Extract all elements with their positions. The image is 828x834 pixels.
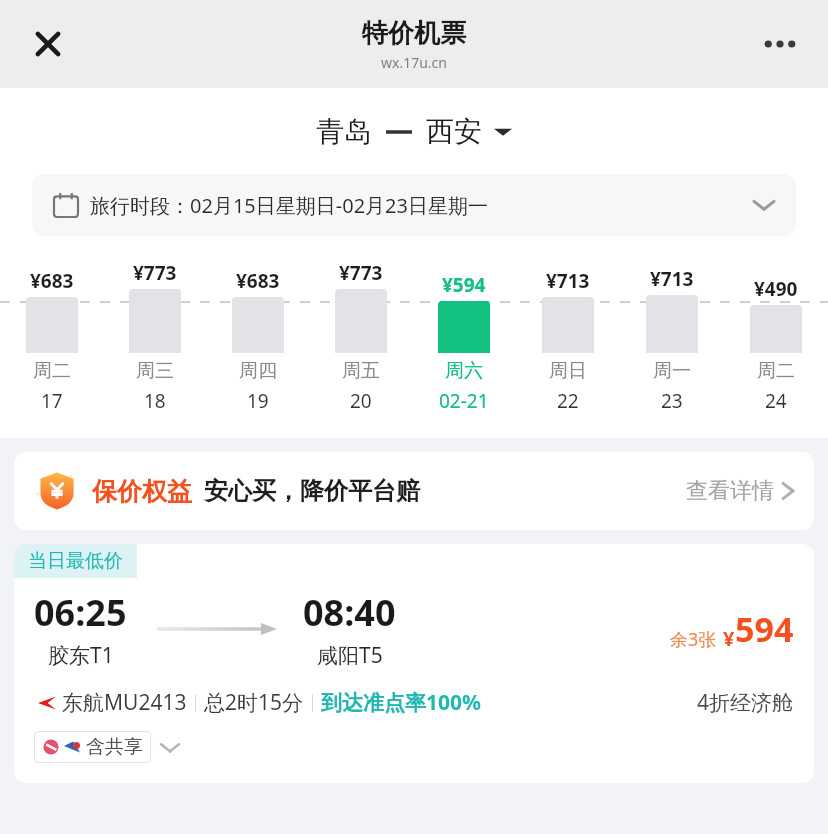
staticText: ¥773 [133, 260, 177, 286]
staticText: 4折经济舱 [697, 688, 794, 717]
button[interactable]: 保价权益 [14, 452, 814, 530]
staticText: 19 [247, 388, 269, 414]
staticText: 周一 [653, 359, 691, 383]
button[interactable]: ¥773 [309, 258, 412, 424]
button[interactable]: ¥594 [412, 258, 516, 424]
staticText: ¥683 [236, 268, 280, 294]
button[interactable]: ¥683 [0, 258, 103, 424]
staticText: 余3张 [670, 627, 717, 652]
staticText: 周四 [239, 359, 277, 383]
staticText: ¥713 [546, 268, 590, 294]
staticText: 当日最低价 [28, 549, 123, 573]
button[interactable]: 当日最低价 [14, 544, 814, 783]
staticText: 青岛 [316, 114, 372, 149]
staticText: ¥ [723, 625, 735, 652]
staticText: 总2时15分 [204, 688, 304, 717]
staticText: 周五 [342, 359, 380, 383]
staticText: 08:40 [303, 588, 396, 637]
staticText: ¥490 [754, 276, 798, 302]
staticText: 23 [661, 388, 683, 414]
staticText: ¥773 [339, 260, 383, 286]
staticText: 周三 [136, 359, 174, 383]
staticText: 18 [144, 388, 166, 414]
staticText: 06:25 [34, 588, 127, 637]
staticText: 胶东T1 [48, 641, 114, 670]
button[interactable]: ¥490 [724, 258, 828, 424]
staticText: ¥713 [650, 266, 694, 292]
button[interactable]: Close [22, 18, 74, 70]
staticText: 02-21 [439, 388, 489, 414]
staticText: 周二 [757, 359, 795, 383]
staticText: 咸阳T5 [317, 641, 383, 670]
staticText: 查看详情 [686, 477, 774, 505]
staticText: 保价权益 [92, 476, 192, 507]
button[interactable]: More options [754, 18, 806, 70]
staticText: wx.17u.cn [381, 53, 447, 72]
staticText: 周日 [549, 359, 587, 383]
staticText: 含共享 [86, 735, 143, 759]
staticText: 安心买，降价平台赔 [204, 476, 420, 506]
staticText: 20 [350, 388, 372, 414]
staticText: 24 [765, 388, 787, 414]
button[interactable]: 含共享 [34, 731, 151, 763]
staticText: 17 [41, 388, 63, 414]
staticText: 594 [735, 606, 794, 652]
staticText: 东航MU2413 [62, 688, 187, 717]
staticText: 周六 [445, 359, 483, 383]
button[interactable]: ¥683 [206, 258, 309, 424]
button[interactable]: 青岛 [316, 114, 512, 149]
staticText: 旅行时段：02月15日星期日-02月23日星期一 [90, 192, 488, 219]
staticText: ¥683 [30, 268, 74, 294]
button[interactable]: ¥773 [103, 258, 206, 424]
staticText: 周二 [33, 359, 71, 383]
staticText: 22 [557, 388, 579, 414]
staticText: 特价机票 [362, 17, 466, 50]
button[interactable]: ¥713 [620, 258, 724, 424]
staticText: 西安 [426, 114, 482, 149]
staticText: 到达准点率100% [321, 688, 481, 717]
button[interactable]: ¥713 [516, 258, 620, 424]
staticText: ¥594 [442, 272, 486, 298]
button[interactable]: 旅行时段：02月15日星期日-02月23日星期一 [32, 174, 796, 236]
